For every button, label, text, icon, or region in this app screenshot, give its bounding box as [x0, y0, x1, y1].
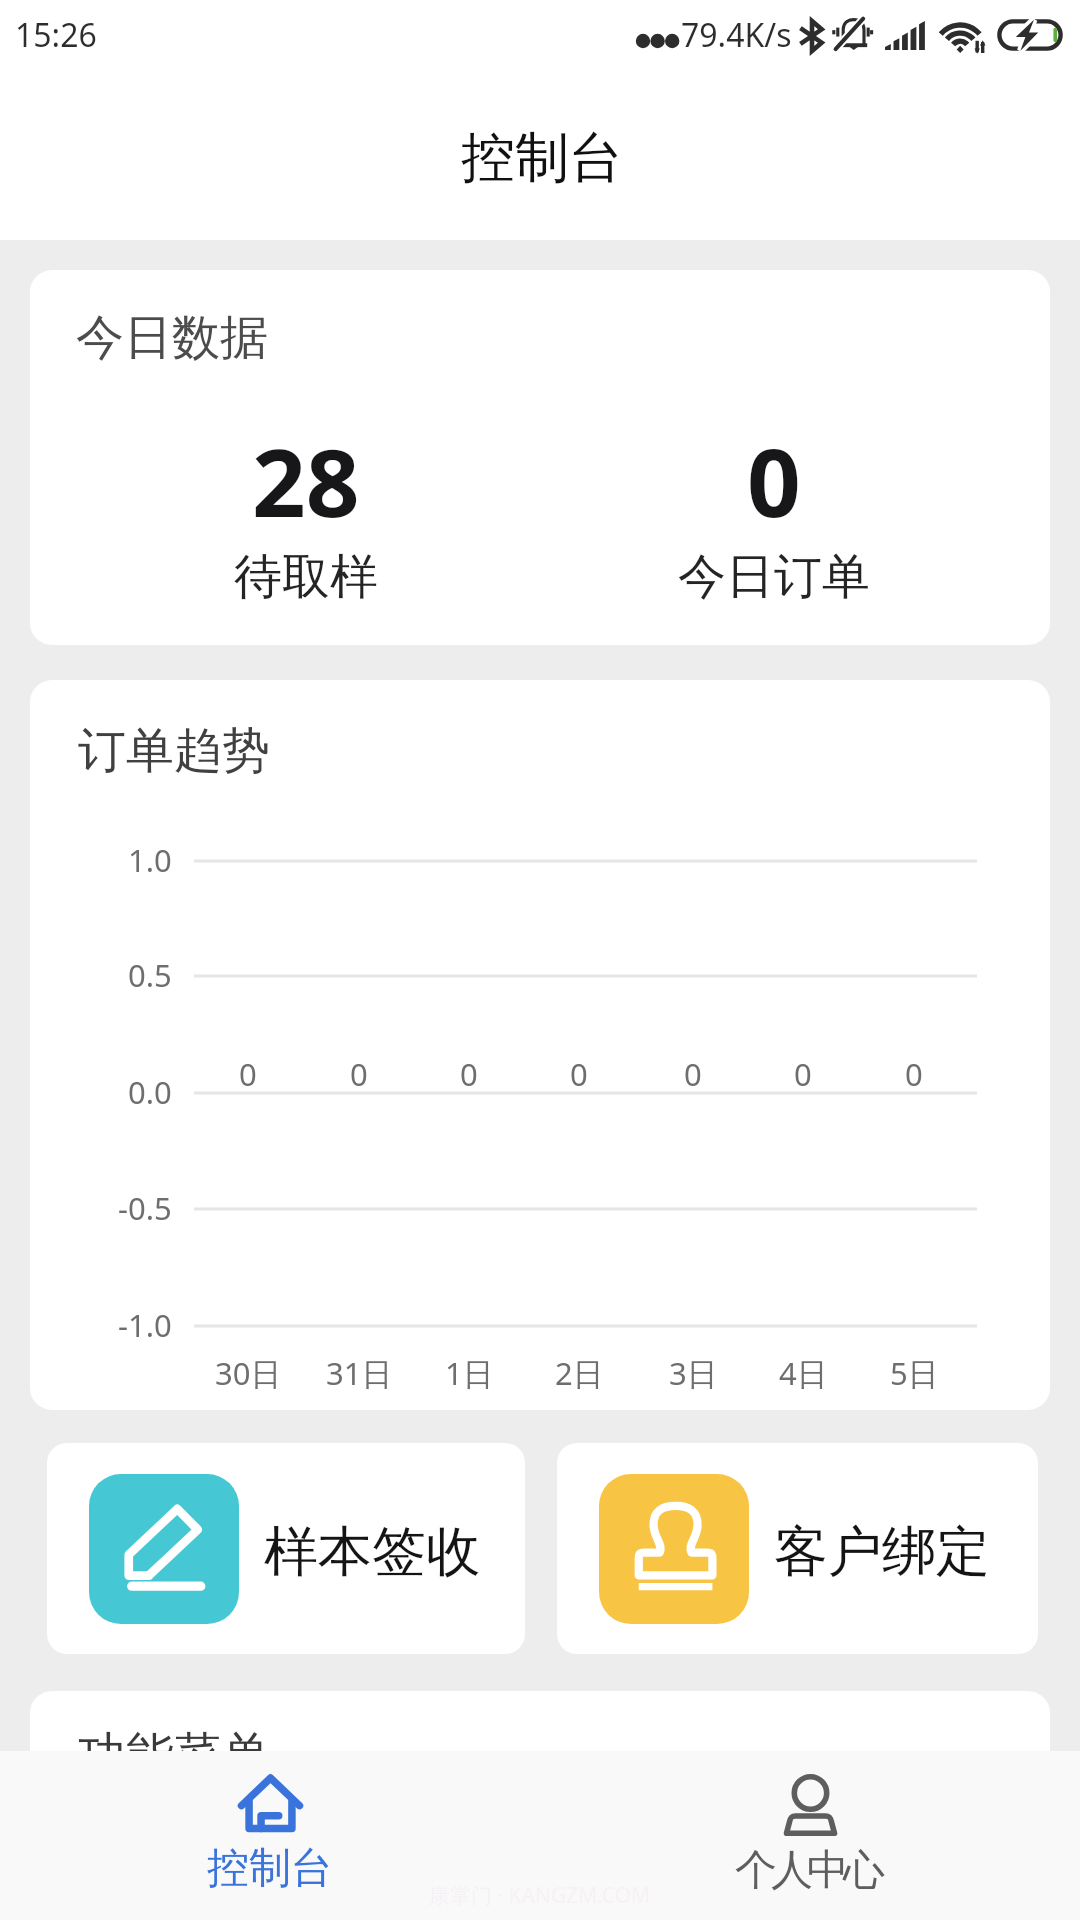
staticText: 31日	[326, 1352, 393, 1394]
staticText: 3日	[669, 1352, 718, 1394]
staticText: 0.5	[128, 954, 172, 996]
staticText: 功能菜单	[78, 1725, 270, 1785]
staticText: 2日	[555, 1352, 604, 1394]
button[interactable]: Profile	[540, 1751, 1080, 1920]
staticText: 28	[252, 417, 360, 545]
staticText: 今日订单	[678, 547, 870, 607]
button[interactable]: Dashboard	[0, 1751, 540, 1920]
staticText: 订单趋势	[78, 721, 270, 781]
staticText: 个人中心	[738, 1844, 882, 1897]
staticText: 0	[905, 1053, 923, 1095]
staticText: 客户绑定	[774, 1518, 990, 1586]
staticText: 0	[350, 1053, 368, 1095]
button[interactable]: 0	[540, 390, 1008, 625]
button[interactable]: 客户绑定	[557, 1443, 1038, 1654]
staticText: 0	[684, 1053, 702, 1095]
staticText: 控制台	[461, 124, 623, 192]
staticText: -1.0	[118, 1304, 172, 1346]
staticText: 79.4K/s	[681, 13, 792, 57]
staticText: 0	[460, 1053, 478, 1095]
staticText: 4日	[779, 1352, 828, 1394]
other: Dashboard	[239, 1774, 302, 1832]
staticText: 30日	[215, 1352, 282, 1394]
staticText: 5日	[890, 1352, 939, 1394]
other: Profile	[779, 1774, 842, 1836]
staticText: 样本签收	[264, 1518, 480, 1586]
staticText: 0	[239, 1053, 257, 1095]
staticText: -0.5	[118, 1187, 172, 1229]
staticText: 待取样	[234, 547, 378, 607]
staticText: 0	[794, 1053, 812, 1095]
staticText: 0	[570, 1053, 588, 1095]
staticText: 15:26	[15, 13, 97, 57]
staticText: 0	[747, 417, 801, 545]
staticText: 1.0	[128, 839, 172, 881]
staticText: 控制台	[207, 1842, 333, 1895]
button[interactable]: 28	[72, 390, 540, 625]
staticText: 1日	[445, 1352, 494, 1394]
button[interactable]: 样本签收	[47, 1443, 525, 1654]
staticText: 今日数据	[76, 308, 268, 368]
staticText: 0.0	[128, 1071, 172, 1113]
